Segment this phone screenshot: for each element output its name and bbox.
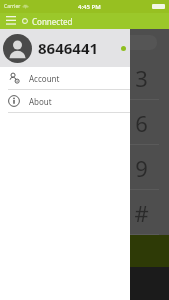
staticText: Account — [29, 73, 60, 84]
button[interactable]: 2 — [57, 55, 113, 100]
button[interactable]: About — [0, 90, 130, 112]
button[interactable]: 4 — [0, 100, 57, 145]
staticText: 3 — [135, 63, 148, 93]
staticText: 5 — [79, 108, 92, 138]
staticText: # — [134, 198, 149, 228]
button[interactable]: 1 — [0, 55, 57, 100]
staticText: 6 — [135, 108, 148, 138]
button[interactable]: 8646441 — [0, 29, 130, 67]
button[interactable]: Call — [0, 235, 169, 267]
staticText: 1 — [22, 63, 35, 93]
button[interactable]: Account — [0, 67, 130, 89]
button[interactable]: 3 — [113, 55, 169, 100]
button[interactable]: Menu — [0, 13, 22, 29]
staticText: 4 — [22, 108, 35, 138]
staticText: 2 — [79, 63, 92, 93]
staticText: 9 — [135, 153, 148, 183]
staticText: Carrier — [4, 3, 21, 10]
staticText: About — [29, 96, 52, 107]
button[interactable]: # — [113, 190, 169, 235]
button[interactable]: 9 — [113, 145, 169, 190]
staticText: 4:45 PM — [78, 3, 101, 11]
button[interactable]: 5 — [57, 100, 113, 145]
staticText: Connected — [32, 16, 73, 27]
staticText: 8646441 — [38, 38, 99, 58]
button[interactable]: 6 — [113, 100, 169, 145]
